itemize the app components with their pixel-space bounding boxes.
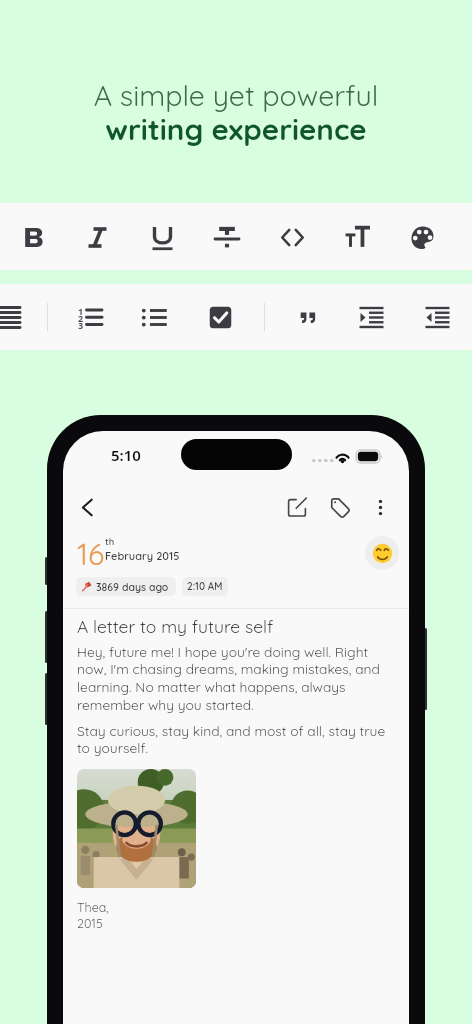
staticText: th [105,535,115,547]
staticText: 16 [77,535,105,573]
staticText: Hey, future me! I hope you're doing well… [77,643,389,713]
staticText: 1 [78,305,84,317]
staticText: Stay curious, stay kind, and most of all… [77,722,389,756]
staticText: B [23,222,44,252]
button[interactable]: Text size [335,215,379,259]
button[interactable]: Quote [286,295,330,339]
button[interactable]: Numbered list [67,295,111,339]
button[interactable]: Bold [11,215,55,259]
button[interactable]: 3869 days ago [76,577,176,596]
button[interactable]: Underline [140,215,184,259]
staticText: writing experience [0,110,472,147]
button[interactable]: Checklist [198,295,242,339]
button[interactable]: Tags [323,491,355,523]
staticText: A letter to my future self [77,615,274,637]
button[interactable]: Text color [400,215,444,259]
staticText: 3 [78,319,84,331]
staticText: Thea, [77,899,109,915]
button[interactable]: Mood [365,536,399,570]
button[interactable]: Align [0,295,30,339]
button[interactable]: Strikethrough [205,215,249,259]
staticText: A simple yet powerful [0,77,472,113]
button[interactable]: Bulleted list [132,295,176,339]
button[interactable]: Increase indent [349,295,393,339]
staticText: 3869 days ago [96,580,169,593]
staticText: February 2015 [105,549,180,563]
button[interactable] [77,769,196,888]
button[interactable]: More options [364,491,396,523]
button[interactable]: Italic [75,215,119,259]
button[interactable]: Code block [270,215,314,259]
button[interactable]: Back [71,491,103,523]
staticText: 2015 [77,915,103,931]
button[interactable]: Decrease indent [415,295,459,339]
staticText: 2:10 AM [187,580,223,593]
button[interactable]: Edit [281,491,313,523]
staticText: 5:10 [111,445,141,465]
staticText: 2 [78,312,84,324]
button[interactable]: 2:10 AM [182,577,228,596]
